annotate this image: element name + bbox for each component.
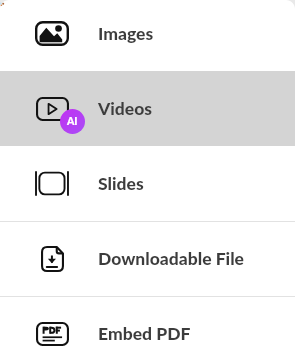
button[interactable]: Downloadable File [0, 221, 295, 296]
staticText: Images [98, 23, 154, 44]
staticText: Videos [98, 98, 153, 119]
button[interactable]: AI [0, 71, 295, 146]
button[interactable]: Slides [0, 146, 295, 221]
staticText: AI [67, 115, 78, 128]
staticText: Embed PDF [98, 323, 191, 344]
button[interactable]: Images [0, 0, 295, 71]
button[interactable]: Embed PDF [0, 296, 295, 358]
staticText: Slides [98, 173, 144, 194]
staticText: Downloadable File [98, 248, 244, 269]
